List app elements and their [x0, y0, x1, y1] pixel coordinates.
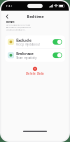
staticText: 9:41 — [6, 4, 13, 8]
staticText: Bedtime — [26, 14, 43, 19]
staticText: Delete Data — [26, 72, 44, 75]
staticText: improve the service, and to keep you — [6, 27, 31, 28]
staticText: Share my activity — [16, 56, 36, 60]
staticText: Exclude — [16, 37, 31, 43]
staticText: Reset — [6, 20, 14, 24]
staticText: Embrace — [16, 51, 33, 56]
button[interactable]: Embrace — [5, 49, 65, 62]
button[interactable]: Exclude — [5, 35, 65, 48]
staticText: updated about new features. — [6, 29, 25, 31]
staticText: Here you allow us to use your data to — [6, 24, 30, 26]
button[interactable]: Back — [1, 11, 12, 20]
staticText: Keep my data out — [16, 43, 40, 46]
button[interactable]: Delete Data — [1, 65, 69, 77]
